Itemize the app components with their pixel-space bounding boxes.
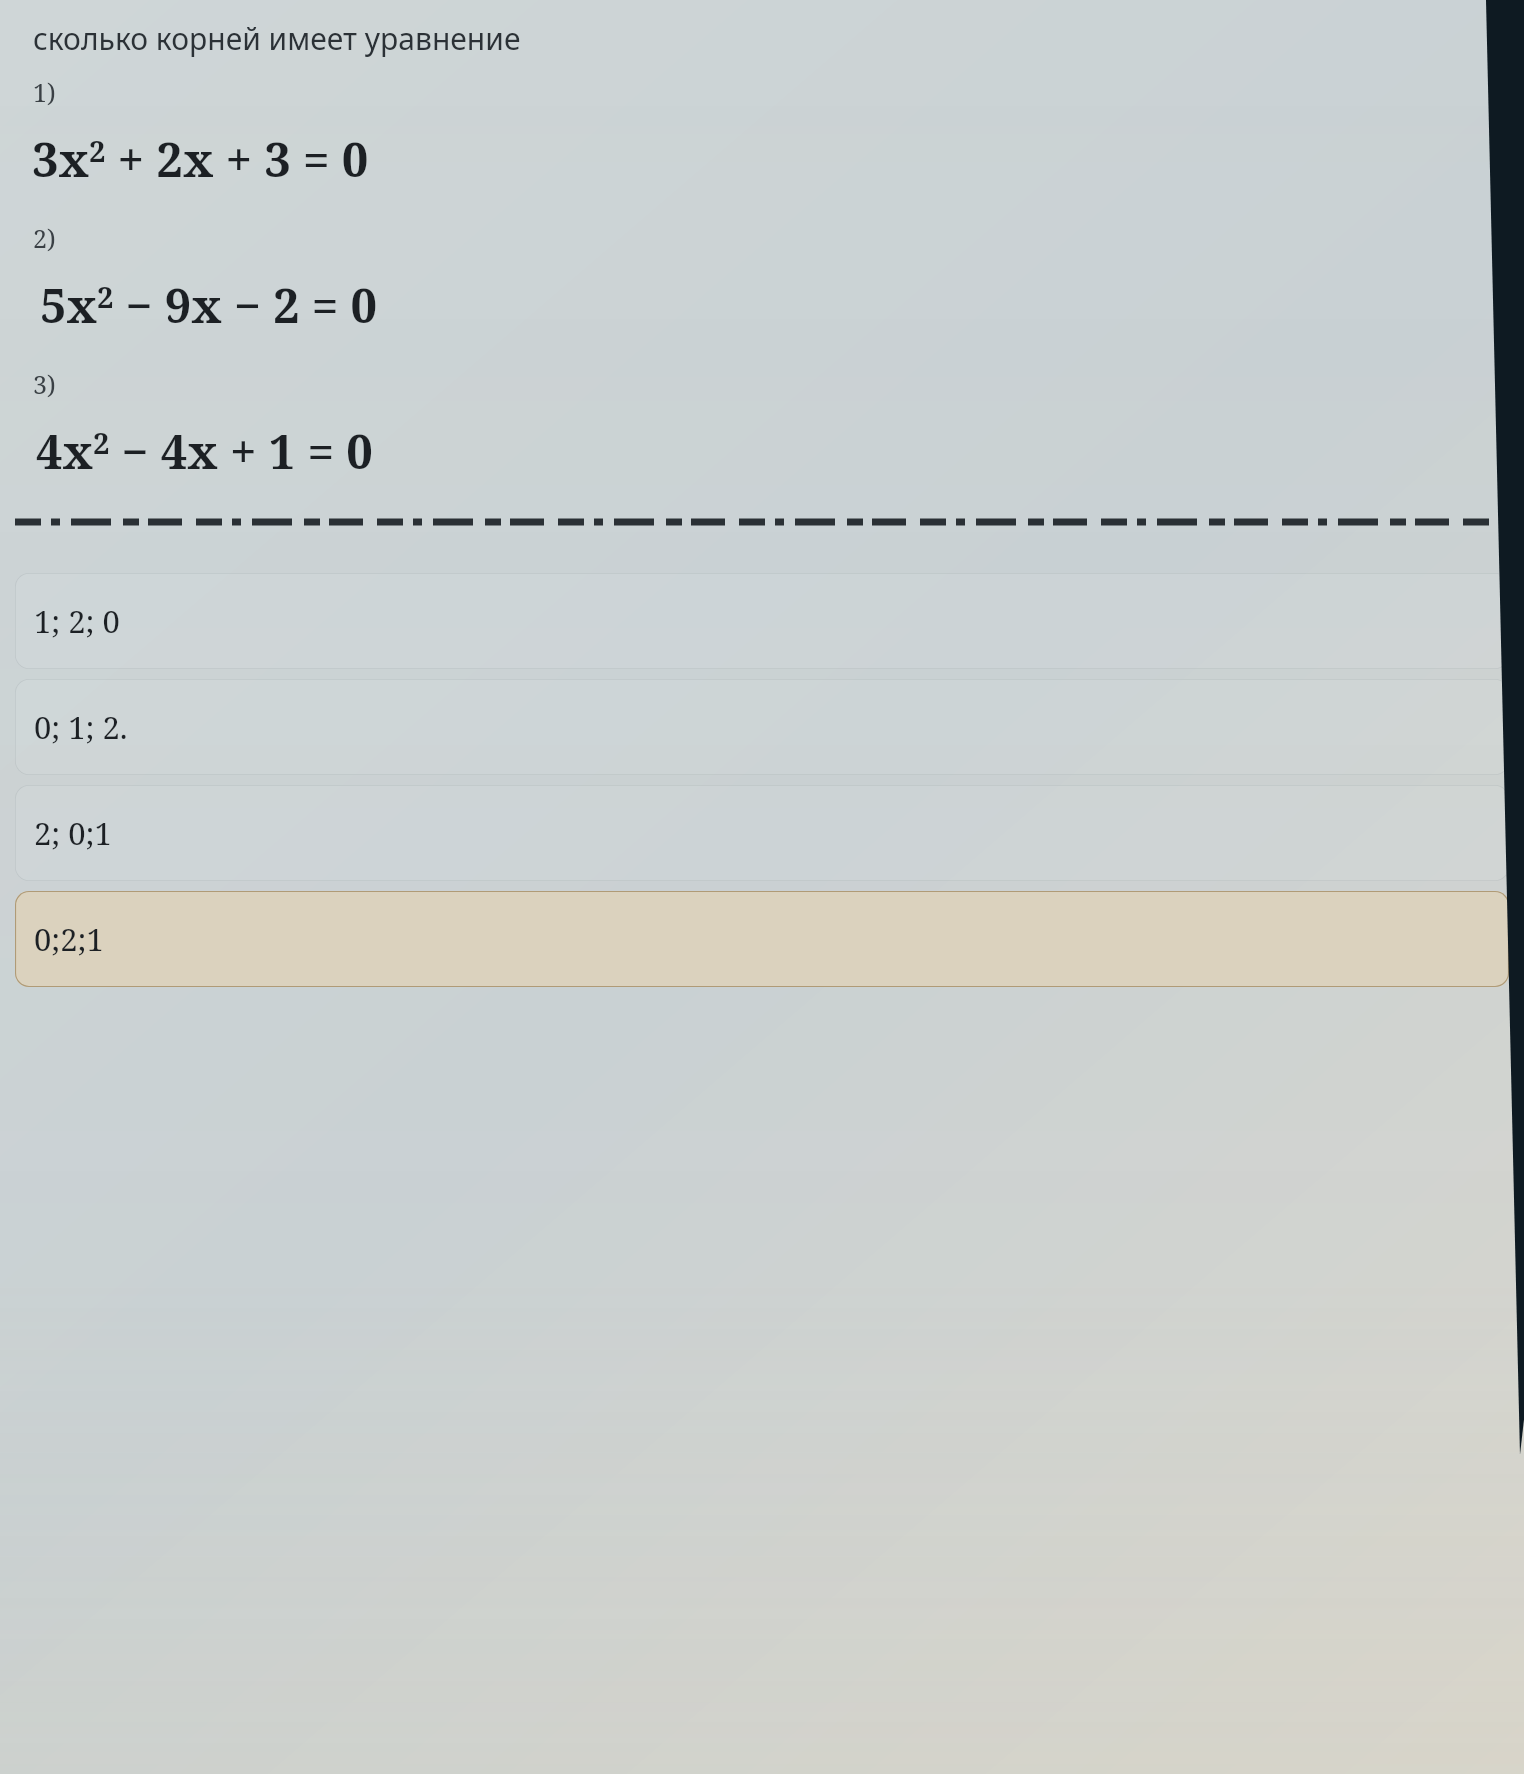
staticText: 0;2;1 [34,918,104,960]
staticText: 1) [33,75,56,109]
staticText: 4x2 − 4x + 1 = 0 [36,419,373,483]
staticText: 2; 0;1 [34,812,112,854]
staticText: 5x2 − 9x − 2 = 0 [40,273,378,337]
button[interactable]: 0;2;1 [15,891,1509,987]
staticText: 0; 1; 2. [34,706,128,748]
button[interactable]: 1; 2; 0 [15,573,1509,669]
button[interactable]: 0; 1; 2. [15,679,1509,775]
staticText: 2) [33,221,56,255]
button[interactable]: 2; 0;1 [15,785,1509,881]
staticText: 1; 2; 0 [34,600,120,642]
staticText: 3) [33,367,56,401]
staticText: сколько корней имеет уравнение [33,18,521,59]
staticText: 3x2 + 2x + 3 = 0 [32,127,369,191]
